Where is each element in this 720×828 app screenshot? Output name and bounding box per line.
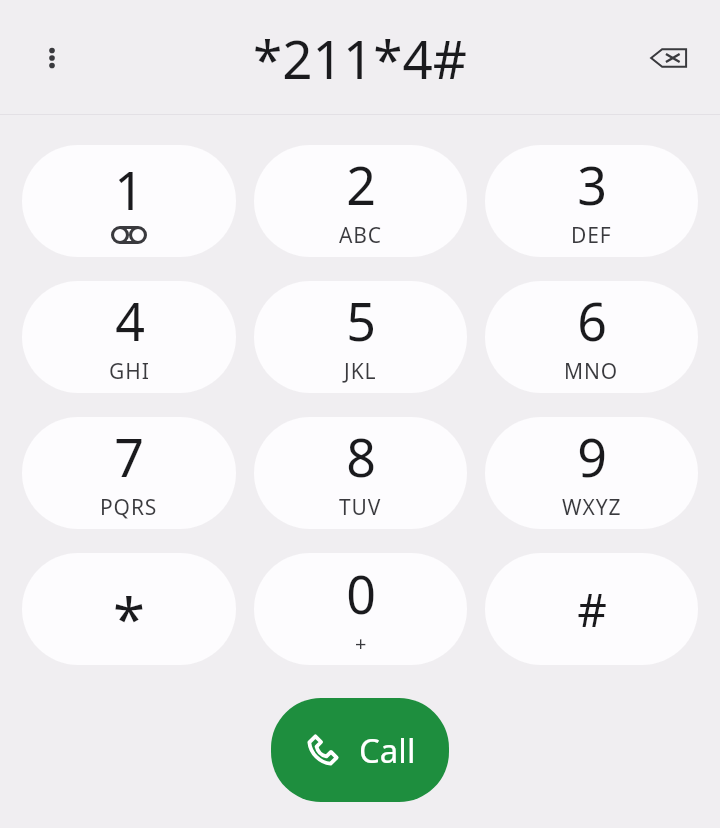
staticText: PQRS [100,493,158,522]
button[interactable]: 4 [22,281,236,393]
staticText: 5 [346,285,376,356]
staticText: *211*4# [253,22,467,94]
staticText: + [355,630,367,657]
button[interactable]: 0 [254,553,467,665]
button[interactable]: More options [28,34,76,82]
staticText: ABC [339,221,383,250]
staticText: 4 [115,285,145,356]
staticText: DEF [571,221,612,250]
staticText: 0 [346,558,376,629]
staticText: # [577,578,607,641]
staticText: 6 [577,285,607,356]
button[interactable]: 8 [254,417,467,529]
staticText: TUV [339,493,382,522]
staticText: Call [359,728,416,773]
button[interactable]: 1 [22,145,236,257]
staticText: WXYZ [562,493,622,522]
staticText: MNO [564,357,619,386]
button[interactable]: 3 [485,145,698,257]
button[interactable]: Backspace [642,31,696,85]
button[interactable]: Call [271,698,449,802]
staticText: 2 [346,149,376,220]
staticText: JKL [344,357,377,386]
button[interactable]: 6 [485,281,698,393]
button[interactable]: 7 [22,417,236,529]
staticText: GHI [109,357,150,386]
button[interactable]: # [485,553,698,665]
staticText: 9 [577,421,607,492]
button[interactable]: 9 [485,417,698,529]
button[interactable]: * [22,553,236,665]
staticText: 7 [114,421,144,492]
button[interactable]: 2 [254,145,467,257]
button[interactable]: 5 [254,281,467,393]
staticText: * [113,579,145,658]
staticText: 3 [577,149,607,220]
staticText: 8 [346,421,376,492]
staticText: 1 [114,154,144,225]
